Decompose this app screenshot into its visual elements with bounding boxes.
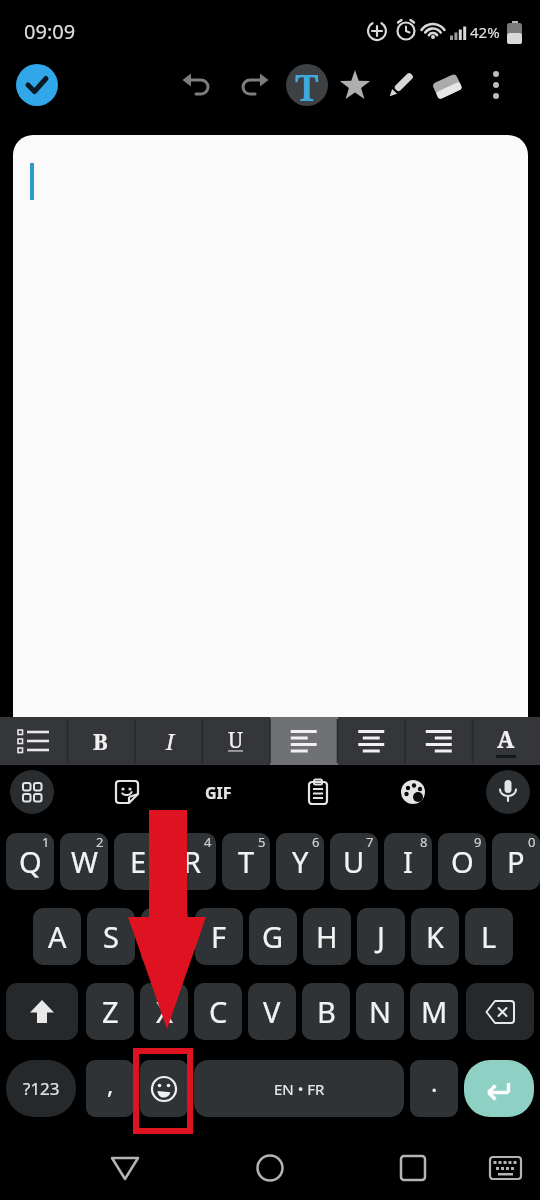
button[interactable]: ?123 [6,1060,76,1117]
staticText: J [377,917,385,956]
staticText: O [451,842,474,881]
staticText: Z [102,992,119,1031]
button[interactable]: R [168,833,216,890]
button[interactable]: G [249,908,297,965]
button[interactable] [105,1148,145,1188]
staticText: S [103,917,119,956]
staticText: U [228,726,244,755]
staticText: ?123 [23,1077,60,1100]
button[interactable] [13,135,528,717]
staticText: 7 [366,833,374,851]
staticText: W [71,842,98,881]
staticText: G [262,917,284,956]
button[interactable]: K [411,908,459,965]
button[interactable]: GIF [205,782,232,804]
button[interactable] [113,778,141,806]
staticText: A [497,723,515,754]
button[interactable] [464,1060,534,1117]
staticText: , [107,1068,114,1101]
staticText: I [403,842,413,881]
button[interactable] [6,983,78,1040]
staticText: B [93,726,108,756]
staticText: R [183,842,202,881]
button[interactable]: F [195,908,243,965]
button[interactable]: W [60,833,108,890]
staticText: 42% [470,22,500,42]
button[interactable] [270,717,338,765]
button[interactable]: O [438,833,486,890]
button[interactable] [304,778,332,806]
staticText: B [317,992,336,1031]
button[interactable] [338,68,372,102]
button[interactable]: U [330,833,378,890]
button[interactable] [140,1060,188,1117]
staticText: I [166,726,175,756]
staticText: 8 [420,833,428,851]
button[interactable] [485,1148,525,1188]
button[interactable] [16,64,58,106]
button[interactable]: P [492,833,540,890]
staticText: 0 [528,833,536,851]
staticText: C [209,992,228,1031]
staticText: T [295,64,319,105]
staticText: 09:09 [24,18,76,45]
button[interactable]: I [384,833,432,890]
button[interactable] [466,983,534,1040]
staticText: Y [292,842,309,881]
staticText: 9 [474,833,482,851]
staticText: A [48,917,67,956]
button[interactable]: S [87,908,135,965]
staticText: Q [19,842,42,881]
button[interactable]: N [356,983,404,1040]
button[interactable]: B [302,983,350,1040]
button[interactable]: T [222,833,270,890]
button[interactable] [384,68,418,102]
button[interactable]: Z [86,983,134,1040]
button[interactable]: J [357,908,405,965]
staticText: 2 [96,833,104,851]
button[interactable]: V [248,983,296,1040]
staticText: L [481,917,497,956]
button[interactable]: Q [6,833,54,890]
button[interactable]: T [286,64,328,106]
staticText: H [316,917,338,956]
staticText: V [263,992,281,1031]
button[interactable]: , [86,1060,134,1117]
button[interactable] [399,778,427,806]
staticText: M [421,992,448,1031]
staticText: 1 [42,833,50,851]
button[interactable] [250,1148,290,1188]
button[interactable]: X [140,983,188,1040]
staticText: F [211,917,227,956]
button[interactable]: A [33,908,81,965]
button[interactable]: Y [276,833,324,890]
button[interactable] [236,69,270,103]
button[interactable]: E [114,833,162,890]
staticText: 5 [258,833,266,851]
button[interactable] [429,68,465,104]
button[interactable]: EN • FR [194,1060,404,1117]
staticText: P [507,842,525,881]
button[interactable]: L [465,908,513,965]
button[interactable] [10,770,54,814]
button[interactable]: H [303,908,351,965]
staticText: 4 [204,833,212,851]
staticText: . [431,1066,438,1099]
staticText: E [130,842,147,881]
button[interactable] [486,770,530,814]
staticText: K [426,917,444,956]
button[interactable] [393,1148,433,1188]
button[interactable] [482,64,510,106]
staticText: U [343,842,365,881]
button[interactable]: . [410,1060,458,1117]
button[interactable]: C [194,983,242,1040]
staticText: EN • FR [274,1079,325,1099]
staticText: T [238,842,255,881]
button[interactable] [181,69,215,103]
button[interactable]: D [141,908,189,965]
button[interactable]: M [410,983,458,1040]
staticText: N [369,992,392,1031]
staticText: 6 [312,833,320,851]
